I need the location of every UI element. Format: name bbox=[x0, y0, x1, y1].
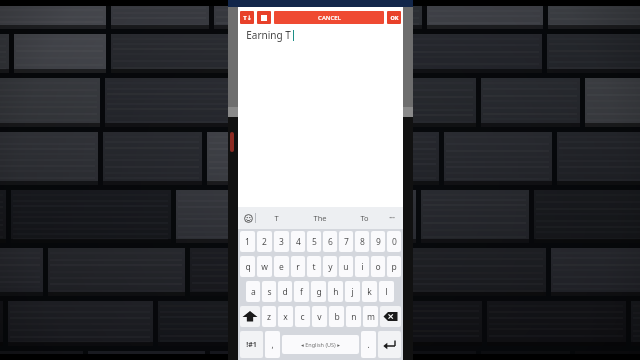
staticText: o bbox=[375, 261, 381, 273]
button[interactable]: w bbox=[257, 256, 272, 277]
staticText: j bbox=[351, 286, 354, 298]
staticText: . bbox=[367, 339, 370, 350]
button[interactable]: l bbox=[379, 281, 394, 302]
button[interactable]: 1 bbox=[240, 231, 255, 252]
button[interactable]: Delete bbox=[257, 11, 271, 24]
button[interactable]: r bbox=[291, 256, 305, 277]
button[interactable]: x bbox=[278, 306, 293, 327]
button[interactable]: Shift bbox=[240, 306, 260, 327]
button[interactable]: a bbox=[246, 281, 260, 302]
button[interactable]: v bbox=[312, 306, 327, 327]
staticText: 8 bbox=[360, 236, 365, 248]
staticText: d bbox=[282, 286, 288, 298]
button[interactable]: h bbox=[328, 281, 343, 302]
staticText: 9 bbox=[376, 236, 381, 248]
button[interactable]: ◂ English (US) ▸ bbox=[282, 335, 359, 354]
staticText: The bbox=[313, 213, 327, 223]
button[interactable]: d bbox=[278, 281, 292, 302]
staticText: z bbox=[267, 311, 271, 323]
button[interactable]: y bbox=[323, 256, 337, 277]
button[interactable]: OK bbox=[387, 11, 401, 24]
button[interactable]: CANCEL bbox=[274, 11, 384, 24]
button[interactable]: i bbox=[355, 256, 369, 277]
button[interactable]: z bbox=[262, 306, 276, 327]
button[interactable]: m bbox=[363, 306, 378, 327]
staticText: T↓ bbox=[243, 14, 252, 22]
button[interactable]: g bbox=[311, 281, 326, 302]
staticText: v bbox=[317, 311, 322, 323]
staticText: 4 bbox=[296, 236, 301, 248]
staticText: To bbox=[360, 213, 369, 223]
staticText: T bbox=[274, 213, 279, 223]
staticText: a bbox=[251, 286, 256, 298]
button[interactable]: T bbox=[256, 207, 297, 229]
staticText: t bbox=[312, 261, 316, 273]
staticText: i bbox=[361, 261, 364, 273]
staticText: u bbox=[343, 261, 349, 273]
staticText: OK bbox=[390, 14, 399, 21]
staticText: g bbox=[316, 286, 322, 298]
button[interactable]: 7 bbox=[339, 231, 353, 252]
button[interactable]: Emoji bbox=[242, 212, 255, 225]
button[interactable]: 9 bbox=[371, 231, 385, 252]
button[interactable]: u bbox=[339, 256, 353, 277]
button[interactable]: Enter bbox=[378, 331, 401, 358]
staticText: p bbox=[391, 261, 397, 273]
button[interactable]: k bbox=[362, 281, 377, 302]
staticText: 6 bbox=[328, 236, 333, 248]
staticText: ••• bbox=[389, 215, 395, 222]
button[interactable]: , bbox=[265, 331, 280, 358]
staticText: m bbox=[367, 311, 375, 323]
staticText: 5 bbox=[312, 236, 317, 248]
staticText: s bbox=[267, 286, 272, 298]
staticText: x bbox=[283, 311, 288, 323]
button[interactable]: f bbox=[294, 281, 309, 302]
staticText: w bbox=[261, 261, 268, 273]
staticText: ◂ English (US) ▸ bbox=[301, 341, 340, 348]
button[interactable]: t bbox=[307, 256, 321, 277]
staticText: 7 bbox=[344, 236, 349, 248]
staticText: 0 bbox=[392, 236, 397, 248]
button[interactable]: More suggestions bbox=[385, 207, 399, 229]
button[interactable]: 3 bbox=[274, 231, 289, 252]
button[interactable]: b bbox=[329, 306, 344, 327]
button[interactable]: !#1 bbox=[240, 331, 263, 358]
button[interactable]: 0 bbox=[387, 231, 401, 252]
button[interactable]: n bbox=[346, 306, 361, 327]
staticText: b bbox=[334, 311, 340, 323]
staticText: 2 bbox=[262, 236, 267, 248]
staticText: 1 bbox=[245, 236, 250, 248]
button[interactable]: o bbox=[371, 256, 385, 277]
staticText: 3 bbox=[279, 236, 284, 248]
button[interactable]: To bbox=[343, 207, 385, 229]
staticText: n bbox=[351, 311, 357, 323]
button[interactable]: 5 bbox=[307, 231, 321, 252]
button[interactable]: j bbox=[345, 281, 360, 302]
button[interactable]: 8 bbox=[355, 231, 369, 252]
staticText: l bbox=[385, 286, 388, 298]
staticText: y bbox=[328, 261, 333, 273]
button[interactable]: The bbox=[297, 207, 343, 229]
button[interactable]: q bbox=[240, 256, 255, 277]
staticText: h bbox=[333, 286, 339, 298]
button[interactable]: c bbox=[295, 306, 310, 327]
button[interactable]: s bbox=[262, 281, 276, 302]
staticText: CANCEL bbox=[318, 14, 341, 22]
button[interactable]: 4 bbox=[291, 231, 305, 252]
staticText: !#1 bbox=[246, 340, 257, 350]
button[interactable]: e bbox=[274, 256, 289, 277]
staticText: , bbox=[271, 339, 274, 350]
staticText: f bbox=[300, 286, 303, 298]
staticText: e bbox=[279, 261, 284, 273]
button[interactable]: 2 bbox=[257, 231, 272, 252]
button[interactable]: 6 bbox=[323, 231, 337, 252]
button[interactable]: Text formatting bbox=[240, 11, 254, 24]
staticText: k bbox=[367, 286, 372, 298]
staticText: c bbox=[300, 311, 305, 323]
staticText: Earning T bbox=[246, 28, 291, 42]
button[interactable]: p bbox=[387, 256, 401, 277]
button[interactable]: Backspace bbox=[380, 306, 401, 327]
staticText: q bbox=[245, 261, 251, 273]
button[interactable]: . bbox=[361, 331, 376, 358]
staticText: r bbox=[296, 261, 300, 273]
